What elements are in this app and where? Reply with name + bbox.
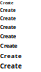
staticText: Create <box>0 62 22 70</box>
staticText: Create <box>0 42 17 49</box>
staticText: Create <box>0 32 16 40</box>
staticText: Create <box>0 24 16 30</box>
staticText: Create <box>0 7 16 13</box>
staticText: Create <box>0 15 16 22</box>
staticText: Create <box>0 0 13 5</box>
staticText: Create <box>0 51 22 60</box>
